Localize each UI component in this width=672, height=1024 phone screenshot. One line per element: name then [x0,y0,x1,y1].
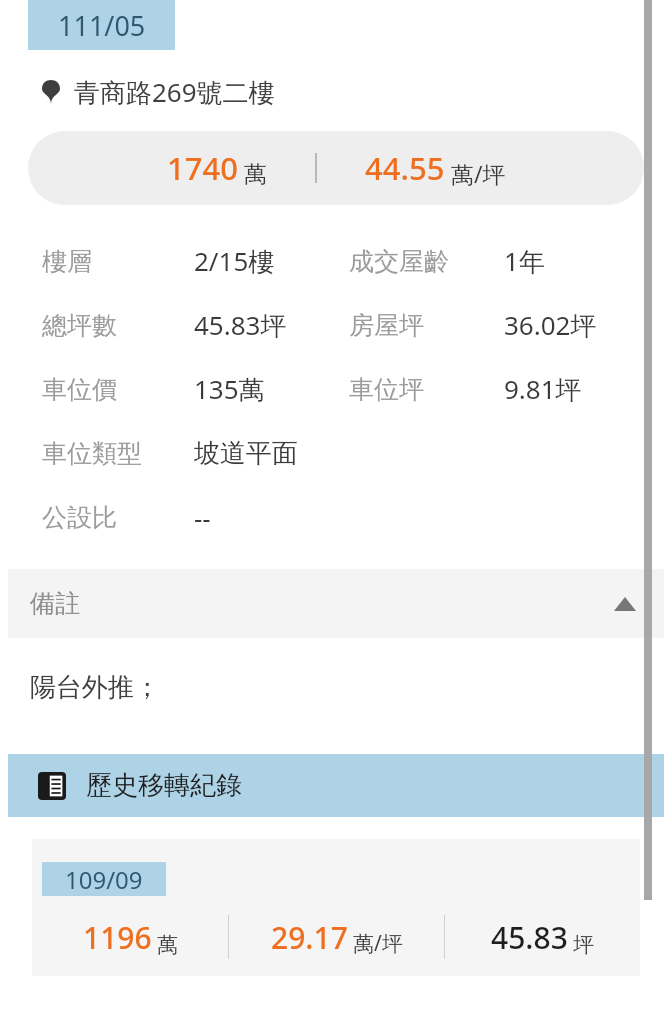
staticText: 1年 [504,243,545,279]
staticText: 111/05 [58,7,146,44]
staticText: 房屋坪 [349,310,504,341]
staticText: 1196 [83,917,152,958]
staticText: 36.02坪 [504,307,597,343]
staticText: 2/15樓 [194,243,349,279]
staticText: 9.81坪 [504,371,582,407]
staticText: 萬/坪 [353,929,403,958]
staticText: -- [194,500,349,535]
staticText: 44.55 [365,147,445,189]
button[interactable]: 109/09 [32,839,640,976]
staticText: 109/09 [65,863,143,896]
staticText: 車位坪 [349,374,504,405]
staticText: 1740 [167,147,238,189]
staticText: 公設比 [42,502,194,533]
staticText: 135萬 [194,371,349,407]
staticText: 萬 [244,160,267,189]
staticText: 29.17 [271,917,348,958]
staticText: 萬 [157,932,178,958]
staticText: 陽台外推； [30,671,160,704]
staticText: 樓層 [42,246,194,277]
button[interactable]: 備註 [8,569,664,638]
staticText: 車位類型 [42,438,194,469]
staticText: 備註 [30,588,80,619]
other: Collapse [614,597,636,611]
staticText: 歷史移轉紀錄 [86,769,242,802]
staticText: 總坪數 [42,310,194,341]
button[interactable]: 歷史移轉紀錄 [8,754,664,817]
staticText: 車位價 [42,374,194,405]
button[interactable]: 1740 [28,131,644,205]
staticText: 青商路269號二樓 [74,74,275,110]
staticText: 萬/坪 [451,158,506,189]
staticText: 坡道平面 [194,437,349,470]
staticText: 成交屋齡 [349,246,504,277]
staticText: 45.83 [491,917,568,958]
staticText: 坪 [573,932,594,958]
staticText: 45.83坪 [194,307,349,343]
